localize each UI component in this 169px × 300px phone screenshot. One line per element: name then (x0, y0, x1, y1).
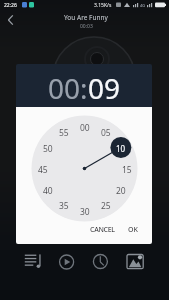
staticText: 40 (43, 185, 53, 195)
button[interactable] (51, 250, 86, 276)
staticText: 3.15K/s (94, 2, 112, 9)
staticText: 00 (80, 122, 90, 132)
staticText: 25 (101, 200, 111, 210)
staticText: 35 (59, 200, 69, 210)
staticText: 10 (116, 143, 126, 153)
staticText: 4G (140, 3, 146, 8)
staticText: 05 (101, 127, 111, 137)
staticText: OK (128, 225, 138, 235)
staticText: 50 (43, 143, 53, 153)
staticText: 20 (116, 185, 126, 195)
button[interactable] (121, 250, 156, 276)
button[interactable]: OK (124, 224, 142, 236)
staticText: You Are Funny (64, 13, 108, 22)
button[interactable] (3, 12, 19, 28)
staticText: 00: (48, 69, 88, 107)
button[interactable] (16, 250, 51, 276)
staticText: 55 (59, 127, 69, 137)
staticText: 00:03 (80, 23, 93, 30)
button[interactable]: CANCEL (85, 224, 119, 236)
staticText: 09 (88, 69, 121, 107)
staticText: CANCEL (90, 225, 115, 235)
staticText: 45 (38, 164, 48, 174)
button[interactable] (86, 250, 121, 276)
staticText: 22:26 (4, 2, 17, 9)
staticText: 15 (122, 164, 132, 174)
staticText: 30 (80, 206, 90, 216)
